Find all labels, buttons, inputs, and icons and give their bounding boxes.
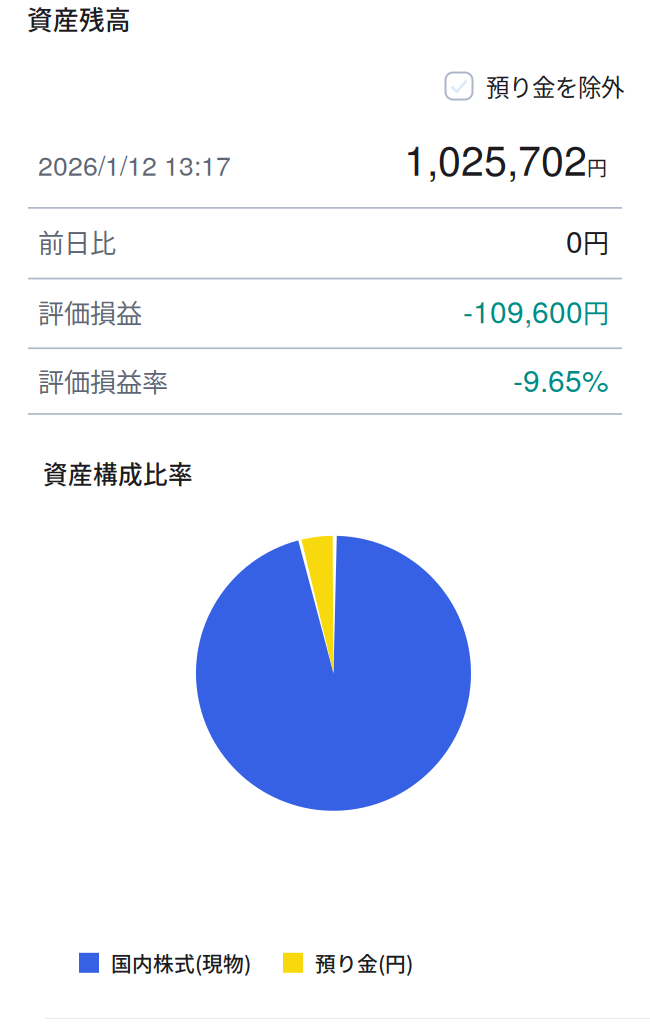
staticText: 円 <box>583 293 609 331</box>
staticText: 円 <box>587 153 607 182</box>
staticText: 前日比 <box>38 223 116 261</box>
staticText: 預り金(円) <box>315 948 413 978</box>
staticText: 国内株式(現物) <box>111 948 251 978</box>
staticText: 円 <box>583 223 609 260</box>
button[interactable]: 預り金を除外 <box>0 60 650 120</box>
staticText: 預り金を除外 <box>486 69 624 103</box>
staticText: -109,600 <box>463 289 583 332</box>
staticText: 資産構成比率 <box>43 455 193 491</box>
staticText: 1,025,702 <box>404 128 587 187</box>
staticText: 資産残高 <box>27 0 131 37</box>
staticText: 0 <box>566 219 583 262</box>
staticText: 2026/1/12 13:17 <box>38 145 231 183</box>
staticText: 評価損益 <box>38 293 142 331</box>
staticText: 評価損益率 <box>38 362 168 399</box>
staticText: -9.65% <box>513 358 609 400</box>
